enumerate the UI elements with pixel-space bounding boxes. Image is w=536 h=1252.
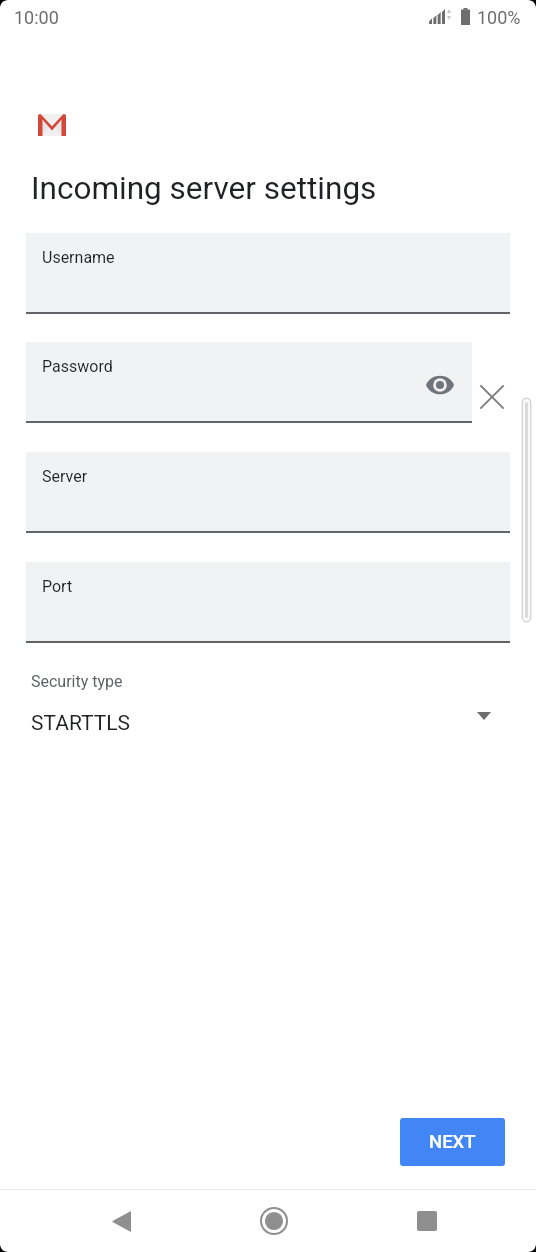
staticText: 10:00 (14, 7, 59, 28)
button[interactable]: Port (26, 562, 510, 643)
button[interactable]: Server (26, 452, 510, 533)
button[interactable]: Show password (420, 365, 460, 405)
button[interactable]: Home (243, 1190, 305, 1252)
staticText: Security type (31, 672, 123, 691)
staticText: Port (42, 577, 73, 596)
button[interactable]: Clear (470, 375, 514, 419)
staticText: STARTTLS (31, 711, 131, 736)
staticText: Incoming server settings (31, 170, 377, 207)
staticText: 100% (477, 7, 521, 28)
staticText: Server (42, 467, 88, 486)
staticText: Password (42, 357, 113, 376)
staticText: NEXT (429, 1131, 476, 1153)
button[interactable]: Security type (0, 666, 536, 746)
button[interactable]: Recents (396, 1190, 458, 1252)
button[interactable]: Password (26, 342, 472, 423)
button[interactable]: NEXT (400, 1118, 505, 1166)
staticText: Username (42, 248, 115, 267)
button[interactable]: Username (26, 233, 510, 314)
button[interactable]: Back (90, 1190, 152, 1252)
